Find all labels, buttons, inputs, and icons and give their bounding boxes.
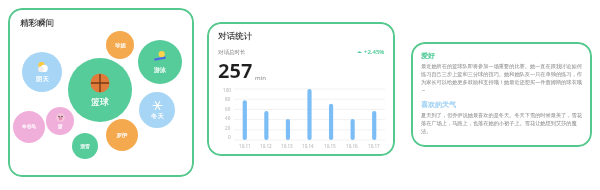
staticText: 10.12	[260, 143, 272, 149]
staticText: 10.13	[281, 143, 293, 149]
staticText: 罗伊	[116, 132, 128, 139]
staticText: 游泳	[154, 66, 166, 74]
staticText: 60	[225, 106, 231, 112]
staticText: 10.14	[302, 143, 314, 149]
button[interactable]: 猪	[46, 107, 74, 135]
staticText: 0	[228, 134, 231, 140]
button[interactable]: 爱好	[411, 42, 592, 147]
staticText: 猪	[58, 123, 63, 129]
staticText: +2.45%	[364, 48, 385, 56]
staticText: 10.16	[346, 143, 358, 149]
staticText: 10.17	[368, 143, 380, 149]
staticText: 10.11	[239, 143, 251, 149]
staticText: 喜欢的天气	[421, 100, 456, 109]
button[interactable]: 阴天	[22, 52, 62, 92]
staticText: 对话统计	[218, 31, 252, 42]
staticText: 爱好	[421, 51, 435, 60]
button[interactable]: 精彩瞬间	[8, 8, 194, 177]
staticText: 滑雪	[80, 143, 90, 149]
staticText: 篮球	[91, 96, 109, 107]
staticText: 80	[225, 96, 231, 102]
button[interactable]: 冬天	[139, 92, 175, 128]
staticText: 20	[225, 125, 231, 131]
button[interactable]: 布谷鸟	[13, 111, 45, 143]
staticText: 100	[223, 87, 231, 93]
staticText: 精彩瞬间	[20, 18, 54, 29]
button[interactable]: 对话统计	[207, 22, 395, 156]
staticText: 最近她所在的篮球队即将参加一场重要的比赛。她一直在跟我讨论如何练习自己三步上篮和…	[421, 63, 582, 94]
staticText: 冬天	[151, 112, 164, 120]
staticText: 布谷鸟	[22, 124, 36, 130]
staticText: 对话总时长	[218, 49, 246, 56]
staticText: 珍妮	[115, 42, 126, 49]
button[interactable]: 滑雪	[72, 133, 98, 159]
button[interactable]: 篮球	[68, 58, 132, 122]
button[interactable]: 罗伊	[106, 119, 138, 151]
staticText: 阴天	[36, 75, 49, 83]
button[interactable]: 游泳	[138, 40, 182, 84]
staticText: 10.15	[324, 143, 336, 149]
staticText: 40	[225, 115, 231, 121]
staticText: 夏天到了，但乔伊说她最喜欢的是冬天。冬天下雪的时候最美了，雪花落在广场上，马路上…	[421, 112, 582, 135]
staticText: min	[255, 74, 266, 82]
button[interactable]: 珍妮	[106, 31, 134, 59]
staticText: 257	[218, 57, 253, 84]
